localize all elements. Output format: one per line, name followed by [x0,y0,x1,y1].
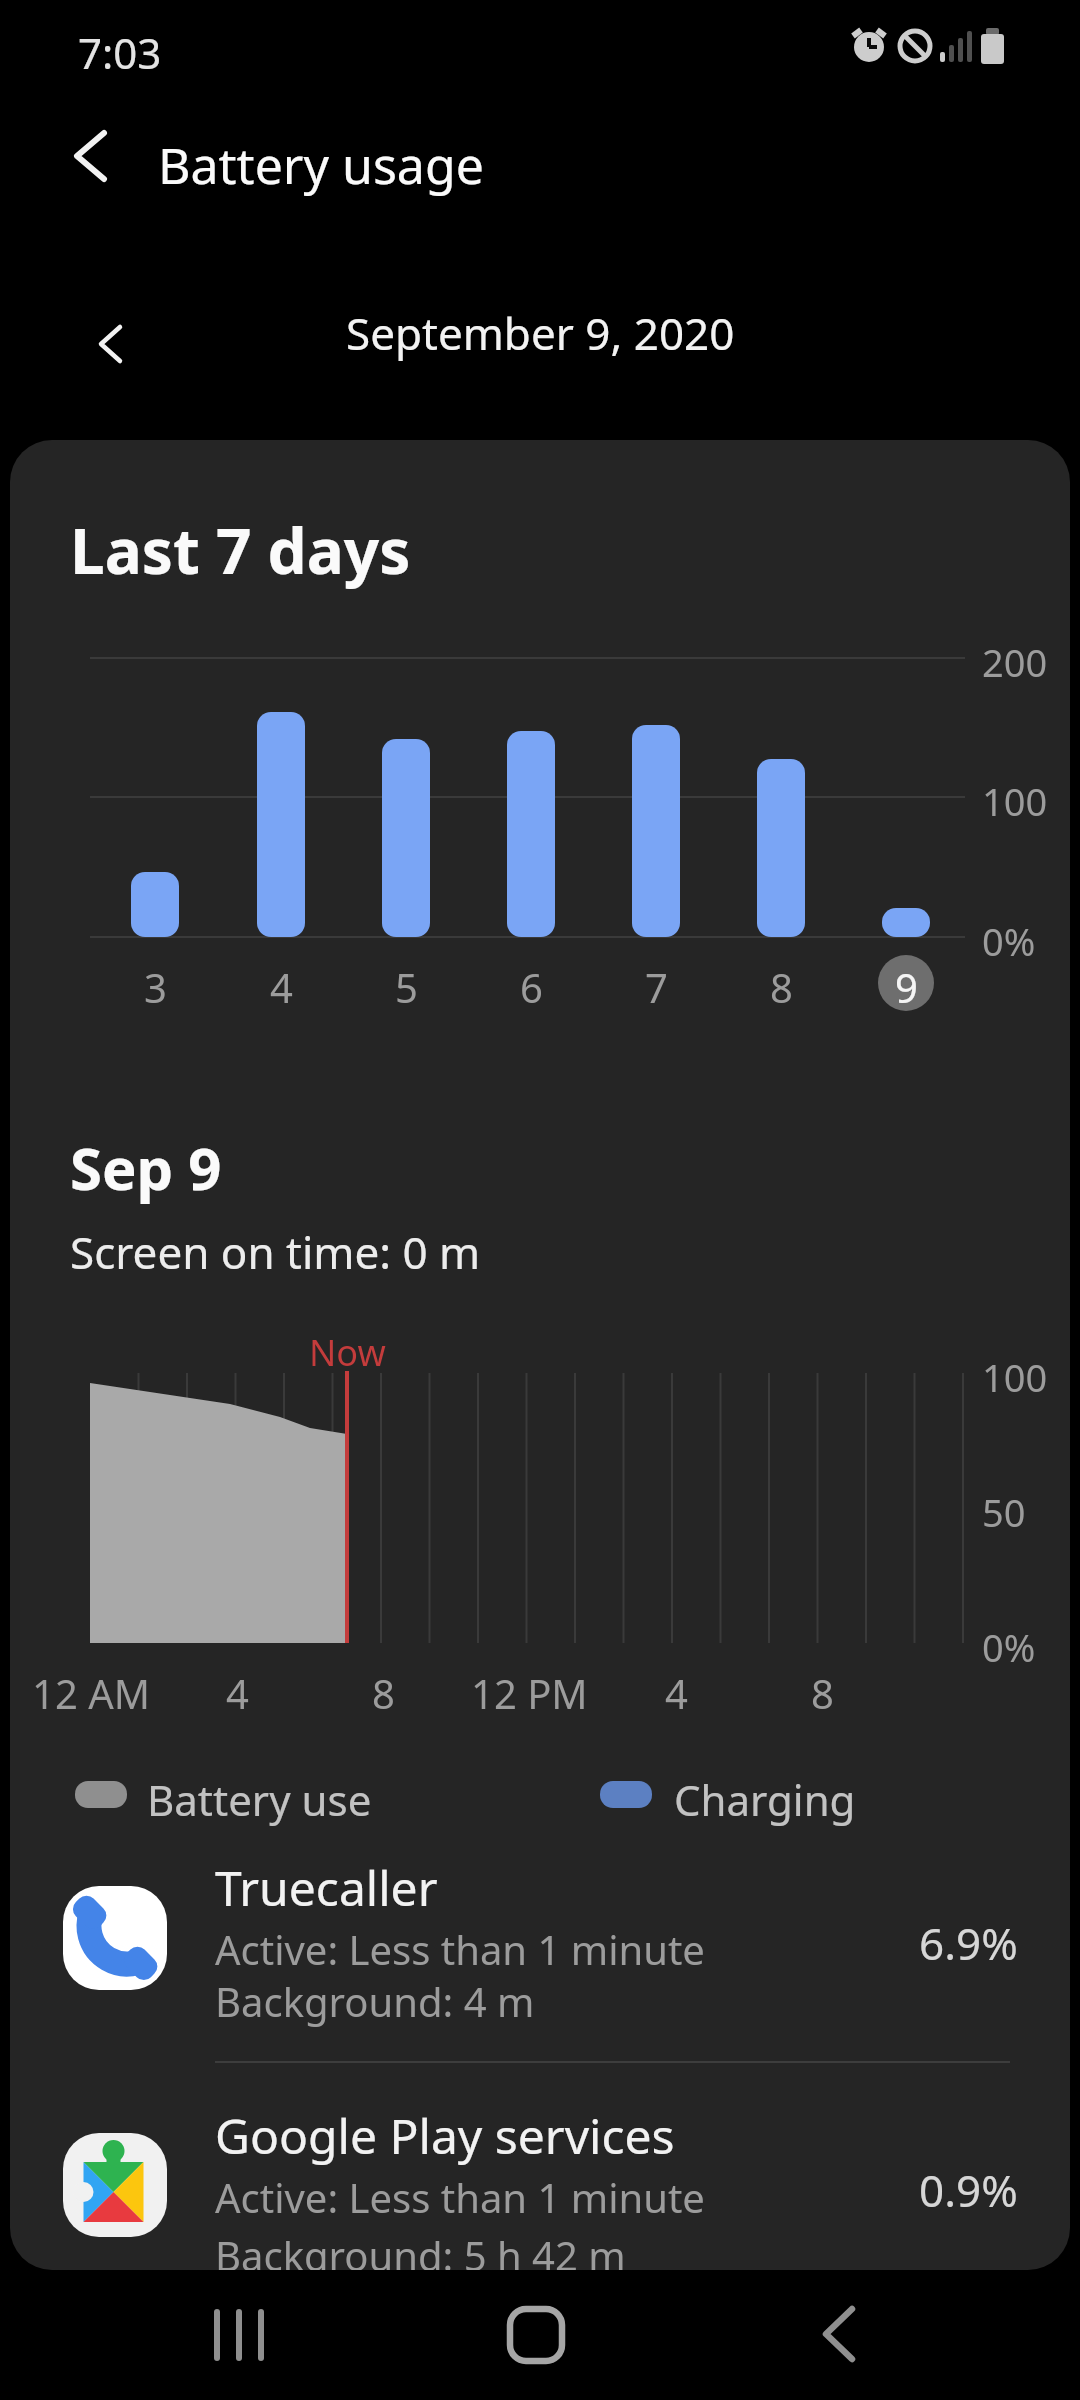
staticText: Background: 4 m [215,1974,535,2028]
staticText: 0% [982,1621,1036,1673]
staticText: 6.9% [919,1913,1018,1973]
staticText: 7:03 [78,24,162,81]
staticText: Battery use [147,1771,372,1828]
staticText: Google Play services [215,2103,675,2168]
button[interactable] [55,115,135,195]
staticText: Now [309,1328,386,1377]
staticText: 6 [520,960,543,1014]
staticText: 8 [811,1666,834,1720]
staticText: 9 [895,960,918,1014]
staticText: Sep 9 [70,1128,222,1207]
staticText: 50 [982,1486,1026,1538]
staticText: Screen on time: 0 m [70,1222,481,1282]
staticText: Truecaller [215,1855,438,1920]
staticText: Background: 5 h 42 m [215,2228,626,2270]
staticText: 7 [645,960,668,1014]
staticText: 100 [982,775,1048,827]
staticText: 12 AM [32,1666,150,1720]
button[interactable] [10,1850,1070,2050]
button[interactable] [10,2100,1070,2270]
staticText: 3 [144,960,167,1014]
button[interactable] [485,2280,595,2390]
staticText: 5 [395,960,418,1014]
staticText: Charging [674,1771,856,1828]
staticText: 12 PM [471,1666,588,1720]
button[interactable] [80,305,140,365]
staticText: 4 [270,960,293,1014]
staticText: 4 [226,1666,249,1720]
staticText: 8 [372,1666,395,1720]
staticText: 0.9% [919,2160,1018,2220]
staticText: 4 [665,1666,688,1720]
staticText: 100 [982,1351,1048,1403]
button[interactable] [180,2280,290,2390]
button[interactable] [790,2280,900,2390]
staticText: Last 7 days [70,508,411,592]
staticText: Active: Less than 1 minute [215,1922,705,1976]
staticText: Battery usage [158,131,484,199]
staticText: 8 [770,960,793,1014]
staticText: 200 [982,636,1048,688]
staticText: Active: Less than 1 minute [215,2170,705,2224]
staticText: September 9, 2020 [346,303,735,363]
staticText: 0% [982,915,1036,967]
